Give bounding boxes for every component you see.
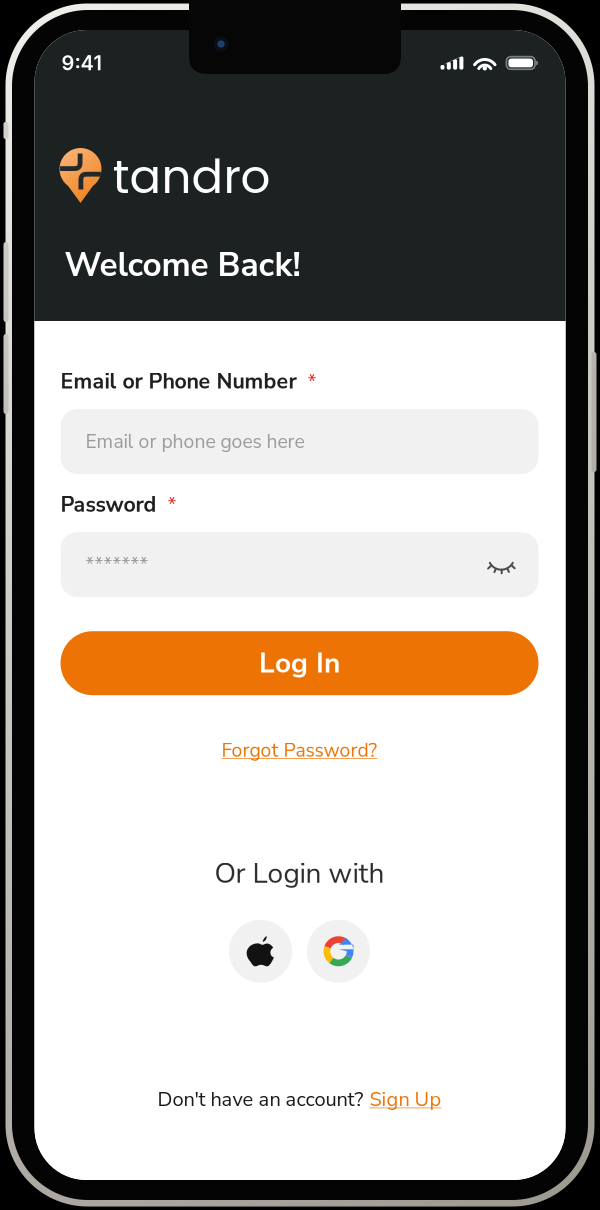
staticText: Forgot Password? <box>221 737 377 764</box>
staticText: Email or Phone Number <box>60 367 296 396</box>
staticText: Sign Up <box>369 1086 441 1113</box>
button[interactable]: Show password <box>486 555 516 575</box>
staticText: * <box>167 491 176 518</box>
staticText: Welcome Back! <box>64 242 300 288</box>
staticText: Log In <box>259 644 340 682</box>
staticText: 9:41 <box>61 51 101 75</box>
button[interactable]: Sign Up <box>369 1086 441 1113</box>
staticText: Email or phone goes here <box>85 428 304 455</box>
staticText: tandro <box>112 144 270 209</box>
staticText: Password <box>60 490 156 519</box>
staticText: * <box>307 368 316 395</box>
button[interactable]: Sign in with Apple <box>229 920 292 983</box>
button[interactable]: Log In <box>60 631 538 695</box>
button[interactable]: Sign in with Google <box>307 920 370 983</box>
staticText: Or Login with <box>214 855 384 893</box>
staticText: ******* <box>85 551 148 578</box>
staticText: Don't have an account? <box>157 1086 363 1113</box>
button[interactable]: Forgot Password? <box>60 729 538 772</box>
